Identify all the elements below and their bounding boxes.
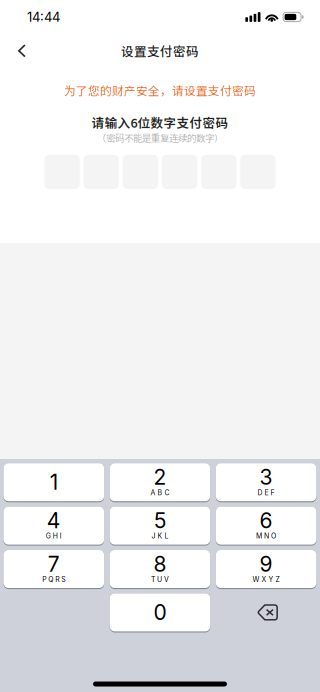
staticText: J K L xyxy=(151,532,168,540)
staticText: 设置支付密码 xyxy=(121,42,199,60)
button[interactable]: 0 xyxy=(110,593,210,631)
staticText: 8 xyxy=(153,551,166,577)
button[interactable]: 5 xyxy=(110,507,210,545)
button[interactable]: 8 xyxy=(110,550,210,588)
button[interactable]: Back xyxy=(0,29,44,73)
staticText: P Q R S xyxy=(42,575,65,584)
staticText: 5 xyxy=(154,508,166,533)
button[interactable]: Delete xyxy=(216,593,316,631)
staticText: T U V xyxy=(151,575,169,584)
staticText: D E F xyxy=(258,488,275,497)
button[interactable]: 7 xyxy=(3,550,104,588)
staticText: 14:44 xyxy=(27,9,60,25)
staticText: 7 xyxy=(48,551,60,577)
button[interactable]: 3 xyxy=(216,463,316,501)
button[interactable]: 6 xyxy=(216,507,316,545)
staticText: 9 xyxy=(260,551,273,577)
staticText: 3 xyxy=(260,464,273,490)
staticText: G H I xyxy=(46,532,62,540)
button[interactable]: 1 xyxy=(3,463,104,501)
staticText: 0 xyxy=(153,600,166,625)
staticText: 为了您的财产安全，请设置支付密码 xyxy=(64,82,256,99)
staticText: 2 xyxy=(153,464,166,490)
button[interactable]: 4 xyxy=(3,507,104,545)
staticText: W X Y Z xyxy=(253,575,280,584)
button[interactable]: 9 xyxy=(216,550,316,588)
staticText: 6 xyxy=(260,508,273,533)
staticText: （密码不能是重复连续的数字） xyxy=(97,131,223,144)
staticText: 4 xyxy=(47,508,61,533)
button[interactable]: 2 xyxy=(110,463,210,501)
staticText: 1 xyxy=(50,469,58,495)
staticText: A B C xyxy=(150,488,169,497)
staticText: M N O xyxy=(256,532,276,540)
staticText: 请输入6位数字支付密码 xyxy=(91,113,228,131)
